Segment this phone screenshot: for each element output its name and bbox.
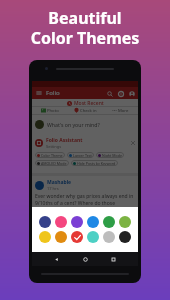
staticText: Check in [80, 108, 97, 114]
button[interactable]: Color swatch [55, 216, 67, 228]
staticText: AMOLED Mode [41, 161, 67, 166]
button[interactable]: Color swatch [71, 216, 83, 228]
button[interactable]: Night Mode [96, 152, 124, 158]
button[interactable]: AMOLED Mode [35, 160, 69, 166]
staticText: Hide Posts by Keyword [77, 161, 116, 166]
button[interactable]: Settings [116, 89, 125, 98]
other: Menu [36, 90, 42, 96]
staticText: Most Recent [74, 100, 104, 107]
staticText: Photo [47, 108, 59, 114]
staticText: Beautiful Color Themes [0, 7, 170, 48]
button[interactable]: Back [52, 255, 61, 264]
button[interactable]: Color swatch [103, 216, 115, 228]
button[interactable]: Color swatch [119, 231, 131, 243]
button[interactable]: Photo [32, 107, 68, 114]
button[interactable]: Menu [32, 87, 138, 99]
button[interactable]: Check in [68, 107, 103, 114]
button[interactable]: Color Theme [35, 152, 65, 158]
button[interactable]: More [103, 107, 138, 114]
staticText: More [118, 108, 129, 114]
button[interactable]: Most Recent [32, 99, 138, 107]
button[interactable]: Close [130, 140, 136, 146]
staticText: Mashable [47, 179, 72, 186]
button[interactable]: Color swatch [103, 231, 115, 243]
staticText: Folio [46, 89, 60, 97]
button[interactable]: Recents [109, 255, 118, 264]
staticText: 17 hrs [47, 186, 59, 191]
button[interactable]: Color swatch [119, 216, 131, 228]
staticText: Ever wonder why gas prices always end in… [35, 193, 135, 218]
staticText: Folio Assistant [46, 137, 83, 144]
button[interactable]: Home [81, 255, 90, 264]
button[interactable]: Color swatch [87, 216, 99, 228]
staticText: What's on your mind? [47, 121, 100, 128]
staticText: Settings [46, 144, 62, 149]
button[interactable]: Color swatch [39, 231, 51, 243]
button[interactable]: Larger Text [67, 152, 94, 158]
button[interactable]: Color swatch [55, 231, 67, 243]
button[interactable]: Account [127, 89, 136, 98]
button[interactable]: What's on your mind? [32, 115, 138, 134]
button[interactable]: Color swatch [39, 216, 51, 228]
staticText: Larger Text [73, 153, 92, 158]
button[interactable]: Color swatch [87, 231, 99, 243]
button[interactable]: Hide Posts by Keyword [71, 160, 118, 166]
button[interactable]: Search [105, 89, 114, 98]
staticText: Night Mode [102, 153, 122, 158]
staticText: Color Theme [41, 153, 63, 158]
button[interactable]: Color swatch [71, 231, 83, 243]
